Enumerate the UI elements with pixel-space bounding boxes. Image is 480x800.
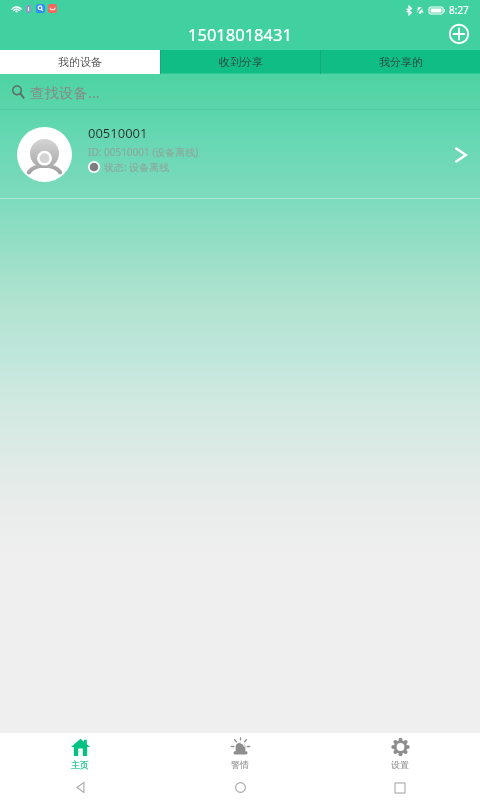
staticText: 我的设备 bbox=[58, 55, 102, 69]
staticText: 警情 bbox=[231, 759, 249, 770]
button[interactable]: Home bbox=[160, 775, 320, 800]
button[interactable]: Back bbox=[0, 775, 160, 800]
button[interactable]: 00510001 bbox=[0, 110, 480, 199]
button[interactable]: 设置 bbox=[320, 733, 480, 775]
staticText: 我分享的 bbox=[379, 55, 423, 69]
staticText: 8:27 bbox=[449, 3, 469, 17]
staticText: 主页 bbox=[71, 759, 89, 770]
staticText: 收到分享 bbox=[219, 55, 263, 69]
staticText: 设置 bbox=[391, 759, 409, 770]
staticText: 查找设备... bbox=[30, 82, 100, 102]
staticText: 状态: 设备离线 bbox=[104, 160, 170, 174]
button[interactable]: 警情 bbox=[160, 733, 320, 775]
button[interactable]: Add device bbox=[447, 22, 471, 46]
button[interactable]: 我分享的 bbox=[321, 50, 480, 74]
staticText: 15018018431 bbox=[188, 23, 292, 45]
button[interactable]: Recents bbox=[320, 775, 480, 800]
button[interactable]: 我的设备 bbox=[0, 50, 160, 74]
button[interactable]: 收到分享 bbox=[161, 50, 320, 74]
staticText: 00510001 bbox=[88, 124, 148, 142]
button[interactable]: 主页 bbox=[0, 733, 160, 775]
staticText: ID: 00510001 (设备离线) bbox=[88, 145, 199, 159]
